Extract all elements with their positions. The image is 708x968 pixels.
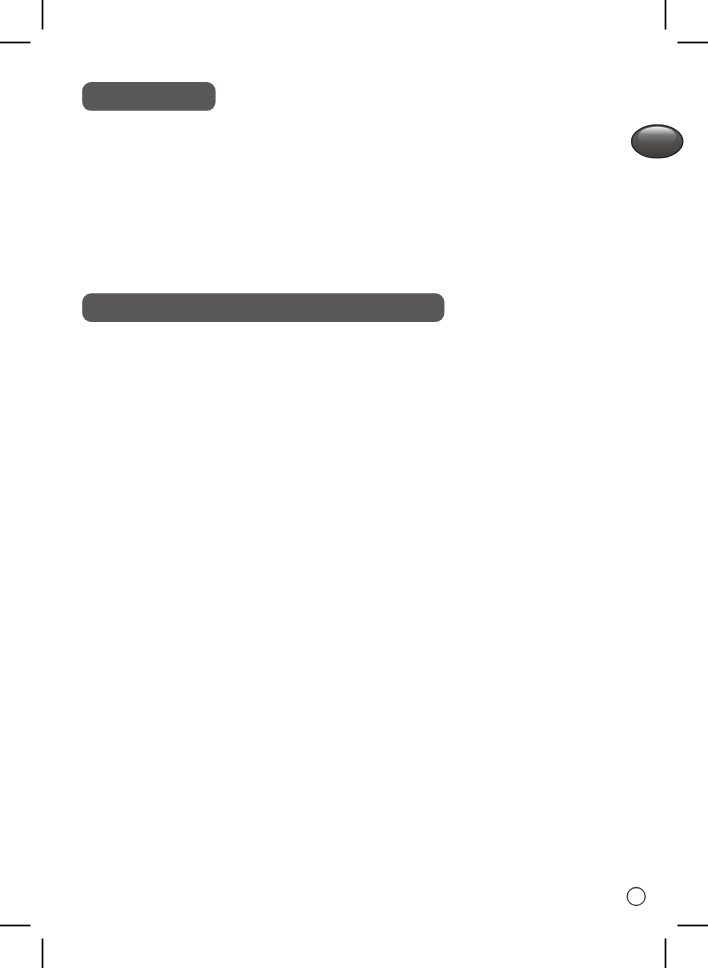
button[interactable]: Title [82, 82, 215, 111]
button[interactable]: Content [82, 293, 444, 322]
button[interactable]: More options [626, 887, 646, 907]
button[interactable]: Action [632, 125, 683, 158]
